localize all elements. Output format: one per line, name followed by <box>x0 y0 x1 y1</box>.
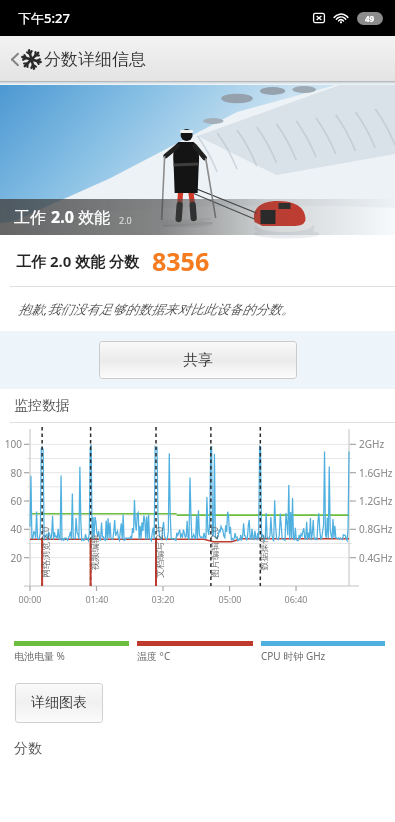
staticText: 图片编辑 2.0 <box>208 526 220 578</box>
staticText: 0.4GHz <box>359 551 393 565</box>
staticText: 温度 °C <box>137 649 171 663</box>
staticText: 1.2GHz <box>359 494 393 508</box>
staticText: 工作 2.0 效能 分数 <box>16 251 140 271</box>
staticText: 抱歉,我们没有足够的数据来对比此设备的分数。 <box>18 300 295 318</box>
staticText: 80 <box>0 466 22 480</box>
staticText: 60 <box>0 494 22 508</box>
staticText: CPU 时钟 GHz <box>261 649 326 663</box>
staticText: 文档编写 2.0 <box>153 526 165 578</box>
staticText: 03:20 <box>147 593 179 605</box>
staticText: 下午5:27 <box>18 9 70 27</box>
staticText: 40 <box>0 522 22 536</box>
staticText: 分数详细信息 <box>44 49 146 70</box>
staticText: 49 <box>365 13 375 24</box>
staticText: 视频编辑 <box>88 534 99 570</box>
button[interactable]: 共享 <box>99 341 297 379</box>
staticText: 数据操作 <box>257 534 268 570</box>
staticText: 2.0 <box>119 214 132 226</box>
button[interactable]: Back <box>6 43 46 76</box>
staticText: 8356 <box>152 244 210 278</box>
staticText: 1.6GHz <box>359 466 393 480</box>
staticText: 2.0 <box>51 206 74 228</box>
staticText: 20 <box>0 551 22 565</box>
staticText: 效能 <box>74 206 111 228</box>
staticText: 01:40 <box>81 593 113 605</box>
staticText: 网络浏览 2.0 <box>39 526 51 578</box>
staticText: 2GHz <box>359 437 385 451</box>
staticText: 分数 <box>14 740 42 758</box>
staticText: 详细图表 <box>31 694 87 712</box>
staticText: 05:00 <box>214 593 246 605</box>
staticText: 0.8GHz <box>359 522 393 536</box>
staticText: 100 <box>0 437 22 451</box>
staticText: 00:00 <box>14 593 46 605</box>
staticText: 工作 <box>14 206 51 228</box>
staticText: 监控数据 <box>14 397 70 415</box>
button[interactable]: 详细图表 <box>15 683 103 723</box>
staticText: 06:40 <box>280 593 312 605</box>
staticText: 共享 <box>183 351 213 370</box>
staticText: 电池电量 % <box>14 649 65 663</box>
